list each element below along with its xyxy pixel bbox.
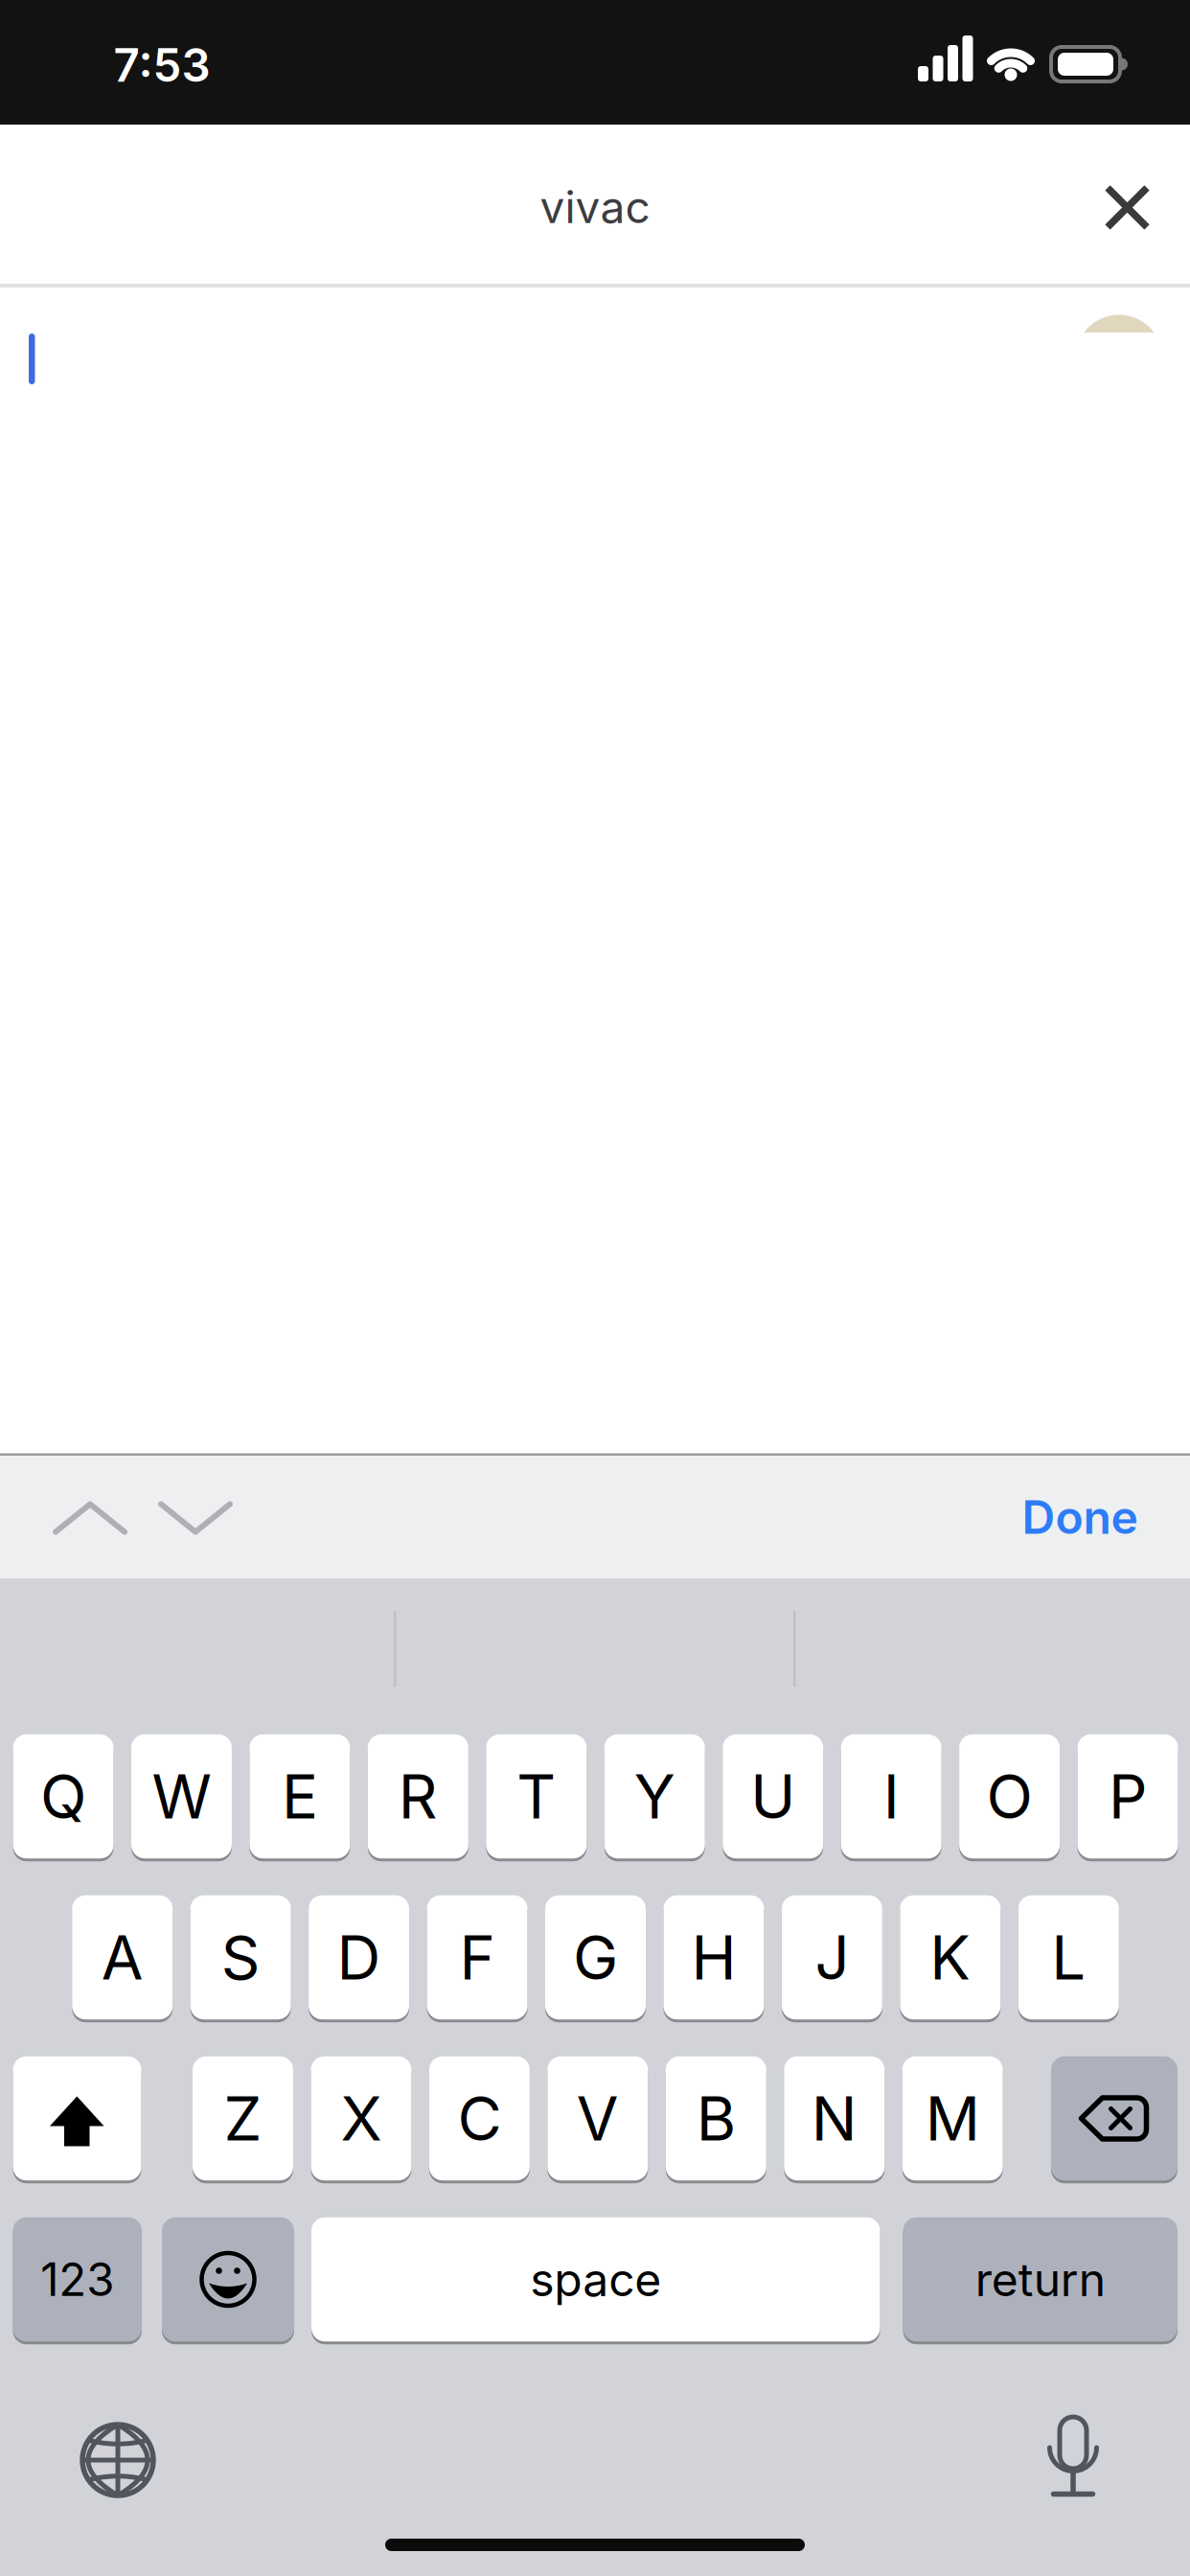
staticText: L (1051, 1921, 1086, 1994)
staticText: Done (1022, 1489, 1138, 1545)
button[interactable]: Q (13, 1732, 114, 1860)
staticText: vivac (540, 180, 650, 234)
staticText: 7:53 (114, 38, 210, 93)
staticText: A (101, 1921, 143, 1994)
button[interactable]: D (309, 1893, 409, 2021)
button[interactable]: P (1077, 1732, 1178, 1860)
staticText: Q (40, 1760, 86, 1833)
button[interactable]: Close (1108, 188, 1147, 227)
button[interactable]: H (664, 1893, 764, 2021)
staticText: U (750, 1760, 795, 1833)
staticText: Y (634, 1760, 675, 1833)
staticText: N (811, 2082, 857, 2155)
button[interactable]: Previous (56, 1504, 125, 1532)
staticText: H (691, 1921, 736, 1994)
button[interactable]: K (900, 1893, 1001, 2021)
button[interactable]: Numbers (13, 2215, 142, 2343)
staticText: T (517, 1760, 556, 1833)
button[interactable]: Z (193, 2054, 293, 2182)
button[interactable]: G (545, 1893, 646, 2021)
button[interactable]: Y (604, 1732, 705, 1860)
button[interactable]: Done (1022, 1489, 1138, 1545)
staticText: P (1109, 1760, 1147, 1833)
button[interactable]: F (427, 1893, 528, 2021)
staticText: B (696, 2082, 736, 2155)
staticText: E (282, 1760, 318, 1833)
button[interactable]: I (841, 1732, 941, 1860)
button[interactable]: T (486, 1732, 587, 1860)
staticText: Z (224, 2082, 262, 2155)
button[interactable]: J (782, 1893, 882, 2021)
button[interactable]: Shift (13, 2054, 141, 2182)
button[interactable]: A (72, 1893, 173, 2021)
button[interactable]: O (959, 1732, 1060, 1860)
button[interactable]: M (902, 2054, 1003, 2182)
button[interactable]: Emoji (162, 2215, 294, 2343)
staticText: V (577, 2082, 619, 2155)
button[interactable]: E (249, 1732, 350, 1860)
button[interactable]: B (666, 2054, 766, 2182)
button[interactable]: W (131, 1732, 232, 1860)
button[interactable]: X (311, 2054, 411, 2182)
button[interactable]: R (368, 1732, 468, 1860)
staticText: return (975, 2252, 1105, 2307)
staticText: M (925, 2082, 980, 2155)
staticText: X (341, 2082, 382, 2155)
staticText: K (930, 1921, 971, 1994)
button[interactable]: space (311, 2215, 880, 2343)
staticText: space (530, 2252, 661, 2307)
staticText: C (457, 2082, 501, 2155)
staticText: J (815, 1921, 849, 1994)
button[interactable]: Next (161, 1504, 230, 1532)
button[interactable]: U (723, 1732, 823, 1860)
button[interactable]: V (547, 2054, 648, 2182)
staticText: D (337, 1921, 381, 1994)
button[interactable]: Dictate (1042, 2413, 1104, 2499)
staticText: F (460, 1921, 495, 1994)
button[interactable]: S (190, 1893, 291, 2021)
staticText: O (986, 1760, 1032, 1833)
button[interactable]: Delete (1051, 2054, 1178, 2182)
button[interactable]: C (429, 2054, 530, 2182)
button[interactable]: return (903, 2215, 1178, 2343)
staticText: S (221, 1921, 260, 1994)
button[interactable]: Next keyboard (77, 2419, 159, 2501)
staticText: R (398, 1760, 438, 1833)
button[interactable]: N (784, 2054, 885, 2182)
staticText: G (573, 1921, 618, 1994)
staticText: W (152, 1760, 211, 1833)
staticText: 123 (40, 2252, 114, 2307)
staticText: I (883, 1760, 899, 1833)
button[interactable]: L (1018, 1893, 1119, 2021)
